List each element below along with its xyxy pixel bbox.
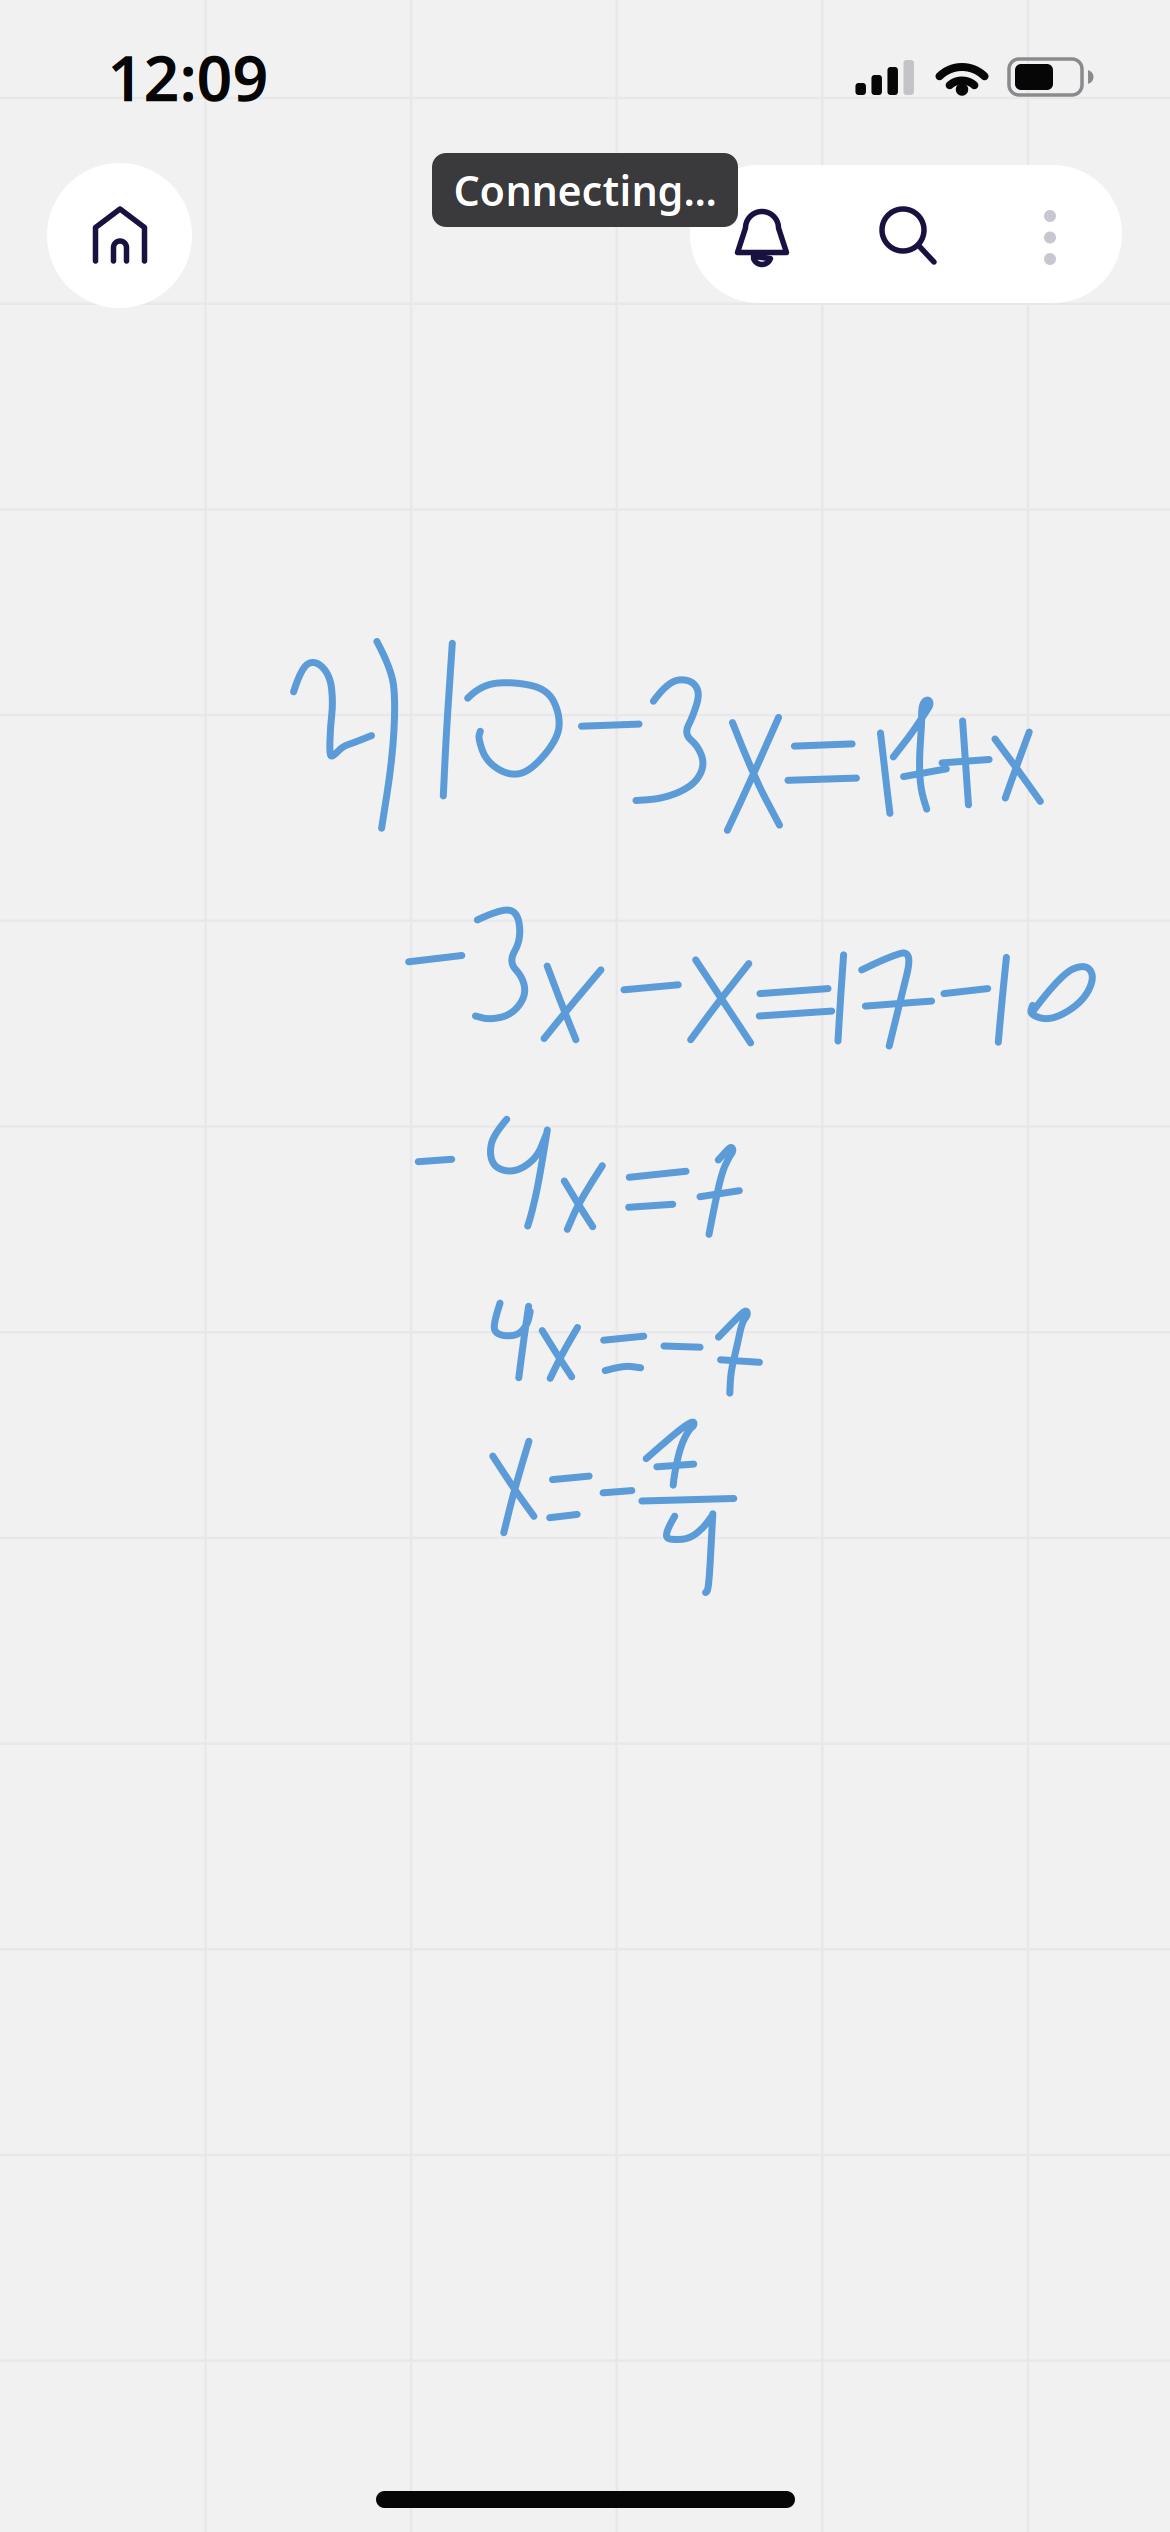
staticText: 12:09 [107,35,268,119]
button[interactable]: Home [47,163,192,308]
button[interactable]: Notifications [690,165,834,303]
button[interactable]: More [978,165,1122,303]
button[interactable]: Search [834,165,978,303]
staticText: Connecting... [453,163,716,217]
